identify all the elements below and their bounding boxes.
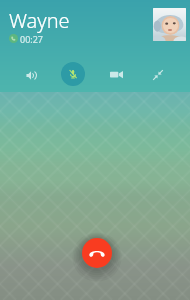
button[interactable]: Contact photo: [153, 8, 186, 41]
staticText: Wayne: [9, 7, 70, 34]
button[interactable]: Mute: [61, 62, 85, 86]
button[interactable]: Video: [104, 62, 128, 86]
staticText: 00:27: [20, 33, 44, 45]
button[interactable]: Speaker: [19, 63, 43, 87]
button[interactable]: End call: [82, 238, 112, 268]
button[interactable]: Minimize: [146, 63, 170, 87]
